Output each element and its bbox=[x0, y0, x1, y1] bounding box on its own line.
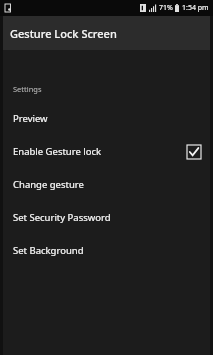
button[interactable]: Gesture Lock Screen bbox=[0, 16, 213, 50]
button[interactable]: Set Security Password bbox=[0, 201, 213, 234]
staticText: 71% bbox=[159, 3, 173, 13]
staticText: Gesture Lock Screen bbox=[10, 26, 117, 41]
button[interactable]: Enable Gesture lock bbox=[0, 135, 213, 168]
button[interactable]: Change gesture bbox=[0, 168, 213, 201]
staticText: Preview bbox=[13, 112, 201, 125]
staticText: Settings bbox=[13, 84, 42, 94]
staticText: Set Background bbox=[13, 244, 201, 257]
staticText: Change gesture bbox=[13, 178, 201, 191]
button[interactable]: Preview bbox=[0, 102, 213, 135]
button[interactable]: Enable Gesture lock checkbox bbox=[186, 144, 201, 159]
staticText: Enable Gesture lock bbox=[13, 145, 186, 158]
staticText: 1:54 pm bbox=[182, 3, 209, 13]
staticText: Set Security Password bbox=[13, 211, 201, 224]
button[interactable]: Set Background bbox=[0, 234, 213, 267]
